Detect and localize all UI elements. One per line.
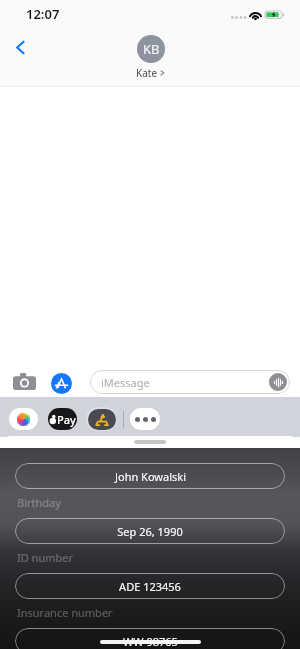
staticText: Pay <box>57 412 76 427</box>
button[interactable]: John Kowalski <box>15 463 285 489</box>
button[interactable]: Camera <box>10 371 39 391</box>
staticText: WW 98765 <box>123 634 178 649</box>
button[interactable]: iMessage <box>90 370 290 394</box>
staticText: 12:07 <box>26 5 60 23</box>
staticText: ADE 123456 <box>119 579 181 594</box>
button[interactable]: iMessage apps <box>51 373 72 394</box>
staticText: Insurance number <box>17 605 113 620</box>
button[interactable]: More apps <box>130 408 160 430</box>
button[interactable]: Photos <box>9 408 38 430</box>
staticText: John Kowalski <box>115 469 186 484</box>
button[interactable]: ADE 123456 <box>15 573 285 599</box>
button[interactable]: Sep 26, 1990 <box>15 518 285 544</box>
staticText: KB <box>143 40 160 58</box>
button[interactable]: Wallet app <box>86 407 117 431</box>
staticText: Sep 26, 1990 <box>117 524 183 539</box>
button[interactable]: Record audio <box>269 373 287 391</box>
button[interactable]: Apple Pay <box>48 408 77 430</box>
staticText: Birthday <box>17 495 61 510</box>
staticText: iMessage <box>101 375 150 390</box>
staticText: Kate <box>136 66 158 80</box>
staticText: ID number <box>17 550 74 565</box>
button[interactable]: KB <box>136 35 165 80</box>
button[interactable]: WW 98765 <box>15 628 285 649</box>
button[interactable]: Back <box>5 32 35 62</box>
